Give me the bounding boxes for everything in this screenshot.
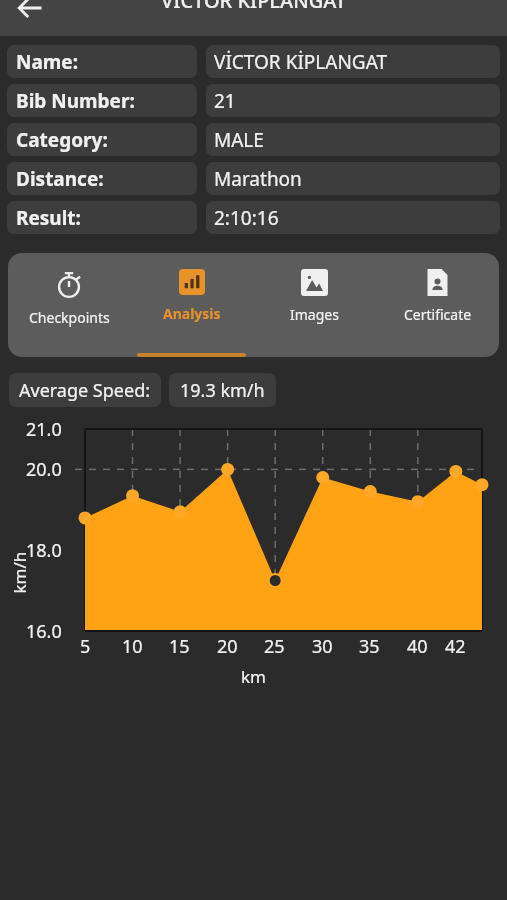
staticText: Analysis <box>163 304 221 323</box>
other: Analysis <box>179 269 205 295</box>
staticText: km <box>241 665 266 688</box>
button[interactable]: Certificate <box>376 253 499 357</box>
button[interactable]: Back <box>12 0 48 36</box>
staticText: 30 <box>312 634 333 659</box>
staticText: Bib Number: <box>16 88 135 114</box>
staticText: Average Speed: <box>19 378 151 403</box>
staticText: 15 <box>169 634 190 659</box>
staticText: 2:10:16 <box>214 205 279 231</box>
button[interactable]: Images <box>253 253 376 357</box>
staticText: Name: <box>16 49 79 75</box>
button[interactable]: Distance: <box>7 162 197 195</box>
staticText: 35 <box>359 634 380 659</box>
staticText: 25 <box>264 634 285 659</box>
other: Images <box>301 269 328 296</box>
button[interactable]: Average Speed: <box>9 373 161 407</box>
button[interactable]: Name: <box>7 45 197 78</box>
staticText: 10 <box>122 634 143 659</box>
staticText: 21.0 <box>26 417 62 442</box>
staticText: Marathon <box>214 166 302 192</box>
staticText: 16.0 <box>26 619 62 644</box>
button[interactable]: 21 <box>206 84 500 117</box>
staticText: 5 <box>80 634 91 659</box>
staticText: 21 <box>214 88 236 114</box>
staticText: 42 <box>445 634 466 659</box>
staticText: 18.0 <box>26 538 62 563</box>
staticText: 20 <box>217 634 238 659</box>
staticText: 20.0 <box>26 457 62 482</box>
button[interactable]: VİCTOR KİPLANGAT <box>206 45 500 78</box>
button[interactable]: Checkpoints <box>8 253 130 357</box>
button[interactable]: Category: <box>7 123 197 156</box>
staticText: Distance: <box>16 166 104 192</box>
button[interactable]: 2:10:16 <box>206 201 500 234</box>
staticText: Images <box>290 305 339 324</box>
button[interactable]: Analysis <box>130 253 253 357</box>
button[interactable]: Bib Number: <box>7 84 197 117</box>
other: Certificate <box>424 269 451 296</box>
button[interactable]: MALE <box>206 123 500 156</box>
staticText: km/h <box>7 551 30 593</box>
button[interactable]: 19.3 km/h <box>169 373 276 407</box>
staticText: Category: <box>16 127 108 153</box>
staticText: 19.3 km/h <box>180 378 265 403</box>
button[interactable]: Result: <box>7 201 197 234</box>
other: Checkpoints <box>54 269 84 299</box>
staticText: VİCTOR KİPLANGAT <box>214 49 388 75</box>
staticText: Certificate <box>404 305 472 324</box>
staticText: MALE <box>214 127 264 153</box>
staticText: Result: <box>16 205 81 231</box>
button[interactable]: Marathon <box>206 162 500 195</box>
staticText: VİCTOR KİPLANGAT <box>161 0 347 14</box>
staticText: Checkpoints <box>29 308 110 327</box>
staticText: 40 <box>407 634 428 659</box>
